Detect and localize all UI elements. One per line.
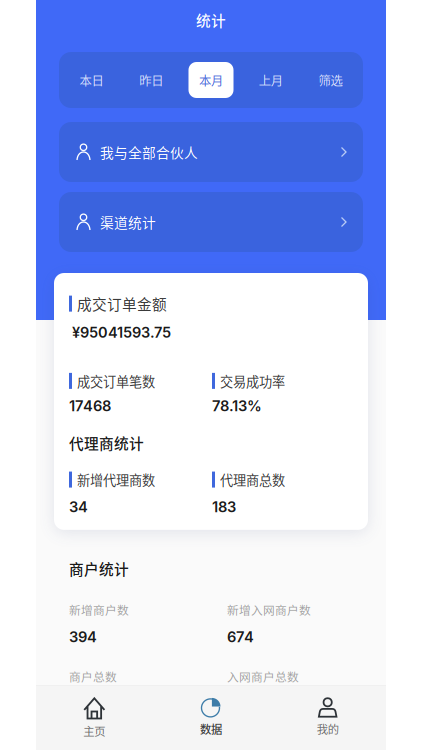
staticText: 成交订单笔数: [77, 371, 155, 390]
button[interactable]: 数据: [153, 685, 269, 750]
staticText: 674: [227, 628, 254, 646]
staticText: 78.13%: [212, 397, 262, 415]
button[interactable]: 主页: [36, 685, 153, 750]
staticText: 本日: [79, 71, 103, 89]
staticText: 新增代理商数: [77, 470, 155, 489]
button[interactable]: 上月: [248, 62, 293, 98]
button[interactable]: 我与全部合伙人: [59, 122, 363, 182]
staticText: 交易成功率: [220, 371, 285, 390]
staticText: 代理商总数: [220, 470, 285, 489]
button[interactable]: 本月: [188, 62, 233, 98]
staticText: 17468: [69, 397, 111, 415]
button[interactable]: 本日: [69, 62, 114, 98]
staticText: 183: [212, 498, 236, 516]
staticText: 统计: [196, 9, 226, 31]
button[interactable]: 昨日: [129, 62, 174, 98]
staticText: ¥95041593.75: [72, 324, 171, 341]
staticText: 商户统计: [69, 558, 129, 579]
staticText: 数据: [200, 720, 222, 737]
staticText: 我与全部合伙人: [100, 142, 198, 162]
staticText: 新增入网商户数: [227, 601, 311, 618]
staticText: 上月: [259, 71, 283, 89]
staticText: 入网商户总数: [227, 668, 299, 685]
staticText: 筛选: [318, 71, 342, 89]
staticText: 本月: [199, 71, 223, 89]
button[interactable]: 我的: [269, 685, 386, 750]
staticText: 394: [69, 628, 97, 646]
staticText: 我的: [317, 721, 339, 737]
staticText: 商户总数: [69, 668, 117, 685]
button[interactable]: 筛选: [308, 62, 353, 98]
staticText: 代理商统计: [69, 432, 144, 453]
staticText: 成交订单金额: [77, 293, 167, 314]
button[interactable]: 渠道统计: [59, 192, 363, 252]
staticText: 渠道统计: [100, 212, 156, 232]
staticText: 昨日: [139, 71, 163, 89]
staticText: 新增商户数: [69, 601, 129, 618]
staticText: 主页: [83, 722, 105, 739]
staticText: 34: [69, 498, 88, 516]
